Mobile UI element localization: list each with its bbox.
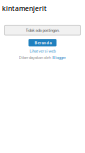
button[interactable]: Lihat versi web [0,48,85,53]
staticText: Lihat versi web [29,48,55,53]
button[interactable]: Blogger. [52,55,66,60]
button[interactable]: Beranda [28,39,56,46]
staticText: Tidak ada postingan. [25,28,59,33]
staticText: Beranda [34,40,51,45]
staticText: Diberdayakan oleh [19,55,51,60]
staticText: Blogger. [52,55,66,60]
staticText: kintamenjerit [2,4,47,13]
